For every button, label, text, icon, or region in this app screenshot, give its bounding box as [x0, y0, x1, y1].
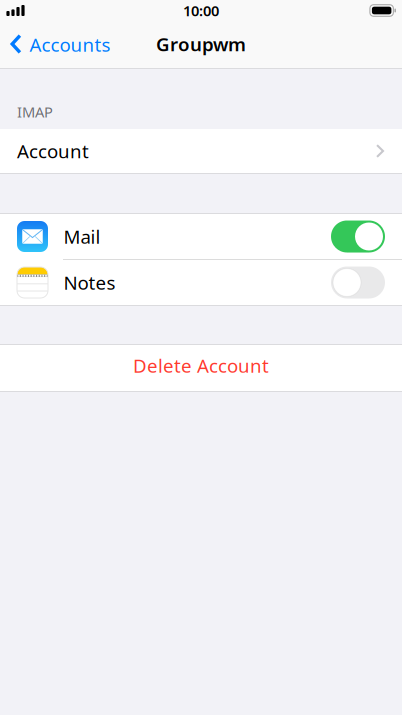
button[interactable]: Account [0, 129, 402, 173]
staticText: Mail [63, 224, 100, 249]
staticText: Notes [63, 270, 115, 295]
staticText: Account [17, 139, 89, 163]
staticText: 10:00 [183, 1, 219, 20]
staticText: Groupwm [156, 32, 246, 56]
staticText: Accounts [30, 32, 111, 57]
staticText: IMAP [17, 102, 53, 121]
button[interactable]: Notes, off [331, 266, 385, 298]
staticText: Delete Account [133, 353, 269, 378]
button[interactable]: Mail, on [331, 220, 385, 252]
button[interactable]: Delete Account [0, 345, 402, 391]
button[interactable]: Accounts [0, 24, 119, 67]
